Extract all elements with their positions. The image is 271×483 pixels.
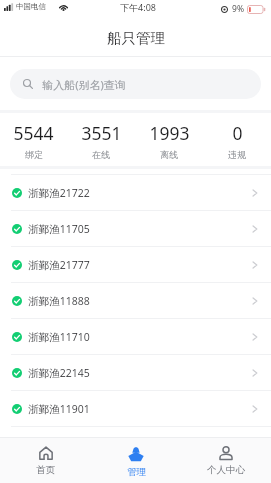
staticText: 浙鄞渔11710 — [28, 330, 90, 344]
button[interactable]: 浙鄞渔21722 — [0, 175, 271, 211]
staticText: 船只管理 — [107, 29, 165, 47]
staticText: 管理 — [127, 466, 146, 478]
staticText: 浙鄞渔21777 — [28, 258, 90, 272]
button[interactable]: 首页 — [0, 438, 91, 483]
button[interactable]: 5544 — [0, 113, 67, 166]
button[interactable]: 3551 — [67, 113, 135, 166]
staticText: 浙鄞渔11901 — [28, 402, 90, 416]
staticText: 0 — [232, 121, 243, 145]
button[interactable]: 浙鄞渔11901 — [0, 391, 271, 427]
staticText: 下午4:08 — [120, 1, 156, 13]
staticText: 1993 — [149, 121, 190, 145]
button[interactable]: 中国渔政33209 — [0, 169, 271, 175]
staticText: 输入船(别名)查询 — [42, 77, 126, 92]
button[interactable]: 个人中心 — [181, 438, 271, 483]
staticText: 3551 — [81, 121, 122, 145]
staticText: 离线 — [160, 149, 178, 160]
staticText: 5544 — [13, 121, 54, 145]
button[interactable]: 1993 — [135, 113, 203, 166]
staticText: 9% — [232, 3, 244, 15]
button[interactable]: 浙鄞渔22145 — [0, 355, 271, 391]
staticText: 浙鄞渔22145 — [28, 366, 90, 380]
staticText: 在线 — [92, 149, 110, 160]
button[interactable]: 浙鄞渔11710 — [0, 319, 271, 355]
button[interactable]: 浙鄞渔11705 — [0, 211, 271, 247]
staticText: 浙鄞渔21722 — [28, 186, 90, 200]
staticText: 绑定 — [25, 149, 43, 160]
staticText: 违规 — [228, 149, 246, 160]
button[interactable]: 输入船(别名)查询 — [10, 69, 261, 99]
button[interactable]: 浙鄞渔11888 — [0, 283, 271, 319]
button[interactable]: 0 — [203, 113, 271, 166]
staticText: 个人中心 — [207, 464, 245, 476]
button[interactable]: 管理 — [91, 438, 181, 483]
staticText: 浙鄞渔11888 — [28, 294, 90, 308]
button[interactable]: 浙鄞渔21777 — [0, 247, 271, 283]
staticText: 首页 — [36, 464, 55, 476]
staticText: 中国电信 — [16, 2, 46, 11]
staticText: 浙鄞渔11705 — [28, 222, 90, 236]
